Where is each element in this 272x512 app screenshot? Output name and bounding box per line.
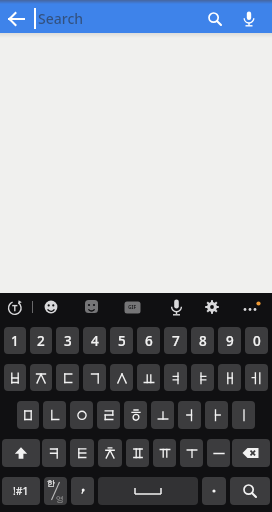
button[interactable] — [70, 401, 93, 429]
button[interactable] — [43, 401, 66, 429]
button[interactable]: 0 — [245, 327, 268, 354]
staticText: 0 — [253, 332, 261, 350]
button[interactable]: 3 — [56, 327, 79, 354]
button[interactable] — [178, 401, 201, 429]
button[interactable] — [124, 401, 147, 429]
button[interactable] — [84, 299, 99, 314]
button[interactable]: 2 — [30, 327, 52, 354]
button[interactable] — [97, 401, 120, 429]
button[interactable] — [71, 477, 94, 505]
button[interactable] — [232, 401, 255, 429]
button[interactable] — [98, 439, 122, 467]
staticText: 영 — [56, 494, 64, 504]
button[interactable] — [242, 301, 262, 315]
button[interactable] — [4, 364, 26, 391]
button[interactable] — [204, 299, 220, 315]
button[interactable] — [43, 299, 59, 315]
button[interactable] — [205, 401, 228, 429]
staticText: 9 — [226, 332, 234, 350]
button[interactable] — [17, 401, 39, 429]
button[interactable]: 6 — [137, 327, 160, 354]
button[interactable] — [168, 298, 185, 317]
staticText: 7 — [172, 332, 180, 350]
staticText: !#1 — [13, 484, 29, 498]
button[interactable] — [42, 439, 66, 467]
button[interactable] — [232, 439, 270, 467]
button[interactable]: 9 — [218, 327, 241, 354]
button[interactable] — [30, 364, 52, 391]
button[interactable] — [218, 364, 241, 391]
button[interactable] — [207, 439, 230, 467]
button[interactable] — [110, 364, 133, 391]
button[interactable] — [230, 477, 270, 505]
button[interactable]: 한 — [44, 477, 67, 505]
button[interactable]: GIF — [124, 301, 141, 314]
button[interactable] — [98, 477, 198, 505]
button[interactable] — [153, 439, 176, 467]
button[interactable] — [0, 5, 32, 33]
staticText: 한 — [47, 478, 55, 488]
staticText: Search — [38, 9, 84, 28]
button[interactable] — [234, 5, 264, 33]
staticText: 5 — [118, 332, 126, 350]
button[interactable] — [164, 364, 187, 391]
staticText: 1 — [11, 332, 19, 350]
button[interactable] — [70, 439, 94, 467]
staticText: GIF — [128, 304, 137, 311]
button[interactable] — [6, 299, 24, 317]
button[interactable]: 1 — [4, 327, 26, 354]
button[interactable] — [180, 439, 203, 467]
button[interactable]: 5 — [110, 327, 133, 354]
button[interactable] — [137, 364, 160, 391]
button[interactable]: 7 — [164, 327, 187, 354]
button[interactable] — [126, 439, 149, 467]
button[interactable] — [83, 364, 106, 391]
button[interactable] — [202, 477, 226, 505]
button[interactable]: !#1 — [2, 477, 40, 505]
staticText: 6 — [145, 332, 153, 350]
button[interactable]: 4 — [83, 327, 106, 354]
button[interactable] — [56, 364, 79, 391]
staticText: 3 — [64, 332, 72, 350]
button[interactable] — [245, 364, 268, 391]
staticText: 4 — [91, 332, 99, 350]
staticText: 8 — [199, 332, 207, 350]
button[interactable] — [191, 364, 214, 391]
staticText: 2 — [37, 332, 45, 350]
button[interactable] — [200, 5, 230, 33]
button[interactable] — [2, 439, 40, 467]
button[interactable]: 8 — [191, 327, 214, 354]
button[interactable] — [151, 401, 174, 429]
